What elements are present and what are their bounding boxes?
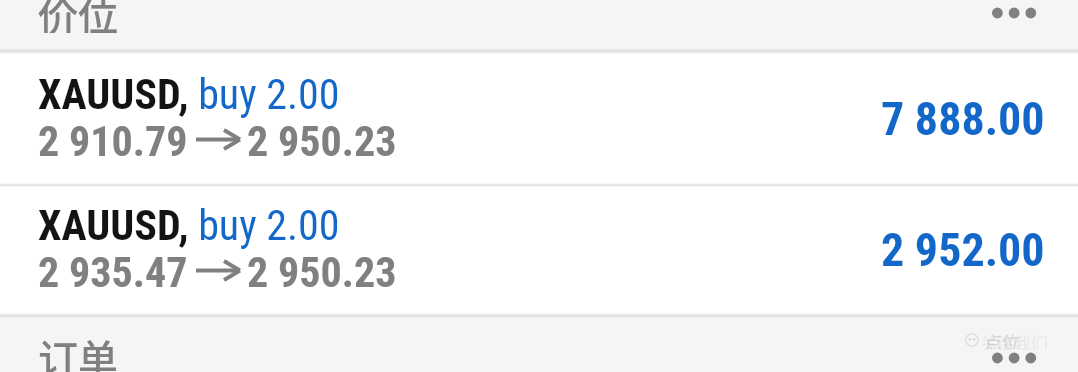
button[interactable]: XAUUSD, buy 2.00 <box>0 187 1078 313</box>
staticText: XAUUSD, buy 2.00 <box>38 201 340 250</box>
staticText: 2 910.79 <box>38 117 188 166</box>
button[interactable]: More options <box>992 352 1036 364</box>
staticText: 2 950.23 <box>247 248 397 297</box>
staticText: 订单 <box>38 328 118 372</box>
button[interactable]: More options <box>992 7 1036 19</box>
staticText: XAUUSD, buy 2.00 <box>38 70 340 119</box>
staticText: 2 950.23 <box>247 117 397 166</box>
staticText: 点位 <box>985 329 1019 349</box>
button[interactable]: XAUUSD, buy 2.00 <box>0 54 1078 183</box>
staticText: 7 888.00 <box>881 92 1045 146</box>
staticText: 2 935.47 <box>38 248 188 297</box>
staticText: 关注我们 <box>980 330 1048 350</box>
staticText: 2 952.00 <box>881 223 1045 277</box>
staticText: 价位 <box>38 0 118 33</box>
